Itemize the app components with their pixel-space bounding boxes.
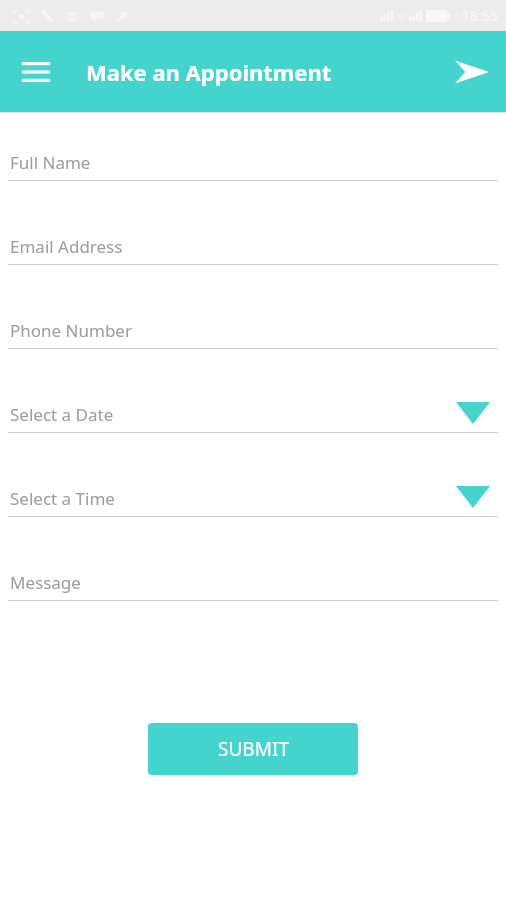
staticText: Select a Date xyxy=(10,403,114,426)
staticText: Full Name xyxy=(10,151,91,174)
button[interactable]: Full Name xyxy=(0,138,506,222)
button[interactable]: Select a Date xyxy=(0,390,506,474)
other: Show options for Select a Time xyxy=(456,484,490,510)
staticText: Email Address xyxy=(10,235,123,258)
staticText: SUBMIT xyxy=(218,736,289,762)
button[interactable]: Open navigation menu xyxy=(16,52,56,92)
button[interactable]: Phone Number xyxy=(0,306,506,390)
other: Show options for Select a Date xyxy=(456,400,490,426)
staticText: Select a Time xyxy=(10,487,115,510)
staticText: Make an Appointment xyxy=(86,57,332,87)
button[interactable]: Email Address xyxy=(0,222,506,306)
staticText: Message xyxy=(10,571,81,594)
button[interactable]: Message xyxy=(0,558,506,642)
staticText: Phone Number xyxy=(10,319,132,342)
button[interactable]: Send appointment request xyxy=(448,48,496,96)
button[interactable]: Select a Time xyxy=(0,474,506,558)
button[interactable]: SUBMIT xyxy=(148,723,358,775)
staticText: 18:55 xyxy=(462,6,498,25)
